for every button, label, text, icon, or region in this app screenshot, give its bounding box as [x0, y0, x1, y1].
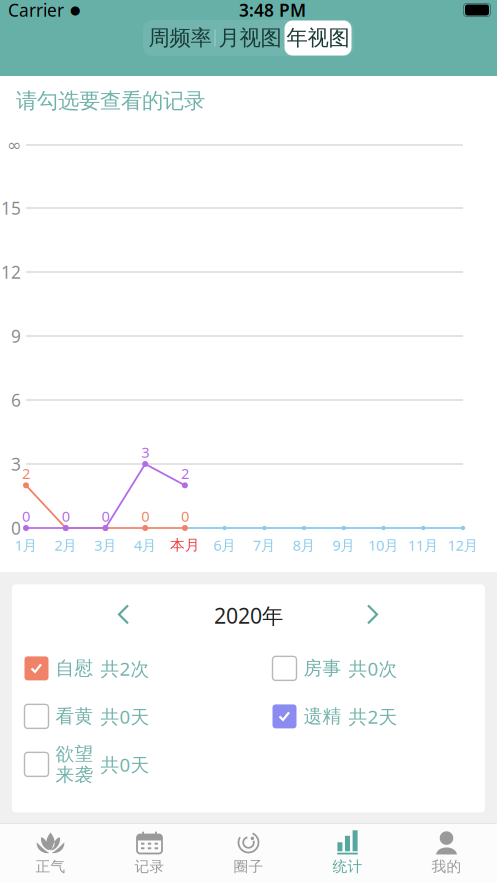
button[interactable]: 下一年: [351, 597, 395, 633]
staticText: 0: [11, 516, 21, 539]
staticText: 3: [11, 452, 21, 475]
staticText: 自慰: [55, 657, 93, 680]
staticText: 3: [141, 442, 149, 462]
staticText: 12月: [447, 535, 478, 555]
staticText: 共0天: [100, 704, 149, 729]
button[interactable]: 上一年: [102, 597, 146, 633]
staticText: 2: [22, 464, 30, 483]
staticText: 共0天: [100, 752, 149, 777]
staticText: 看黄: [55, 705, 93, 728]
button[interactable]: 看黄: [24, 694, 236, 738]
staticText: 周频率: [148, 25, 211, 51]
staticText: 12: [1, 260, 21, 283]
staticText: 欲望: [55, 742, 93, 765]
staticText: 0: [181, 506, 189, 526]
staticText: ●: [70, 3, 80, 17]
button[interactable]: 遗精: [272, 694, 484, 738]
button[interactable]: 房事: [272, 646, 484, 690]
button[interactable]: 月视图: [215, 20, 284, 56]
staticText: 来袭: [55, 763, 93, 786]
staticText: 请勾选要查看的记录: [16, 88, 205, 114]
button[interactable]: 圈子: [199, 827, 298, 879]
staticText: 10月: [368, 535, 399, 555]
staticText: 月视图: [218, 25, 281, 51]
staticText: 0: [101, 506, 109, 526]
staticText: 正气: [35, 857, 65, 875]
staticText: 1月: [14, 535, 37, 555]
staticText: 3月: [94, 535, 117, 555]
staticText: 记录: [134, 857, 164, 875]
staticText: 9月: [332, 535, 355, 555]
staticText: 4月: [134, 535, 157, 555]
staticText: 2月: [54, 535, 77, 555]
staticText: 本月: [170, 536, 200, 554]
staticText: 年视图: [286, 25, 349, 51]
staticText: ∞: [7, 135, 21, 155]
staticText: 我的: [431, 857, 461, 875]
staticText: 6月: [213, 535, 236, 555]
button[interactable]: 正气: [1, 827, 100, 879]
button[interactable]: 自慰: [24, 646, 236, 690]
staticText: 共0次: [348, 656, 397, 681]
staticText: 6: [11, 388, 21, 411]
staticText: 7月: [253, 535, 276, 555]
staticText: 房事: [303, 657, 341, 680]
button[interactable]: 统计: [298, 827, 397, 879]
staticText: 9: [11, 324, 21, 347]
staticText: Carrier: [8, 0, 64, 21]
staticText: 0: [62, 506, 70, 526]
staticText: 0: [141, 506, 149, 526]
staticText: 0: [22, 506, 30, 526]
button[interactable]: 周频率: [145, 20, 214, 56]
button[interactable]: 记录: [100, 827, 199, 879]
button[interactable]: 我的: [397, 827, 496, 879]
staticText: 圈子: [233, 857, 263, 875]
staticText: 共2次: [100, 656, 149, 681]
staticText: 2020年: [214, 601, 283, 629]
staticText: 2: [181, 464, 189, 483]
button[interactable]: 年视图: [284, 20, 351, 55]
staticText: 共2天: [348, 704, 397, 729]
staticText: 11月: [408, 535, 439, 555]
staticText: 统计: [332, 857, 362, 875]
staticText: 8月: [293, 535, 316, 555]
staticText: 15: [1, 196, 21, 219]
staticText: 遗精: [303, 705, 341, 728]
button[interactable]: 欲望: [24, 742, 236, 786]
staticText: 3:48 PM: [239, 0, 306, 21]
